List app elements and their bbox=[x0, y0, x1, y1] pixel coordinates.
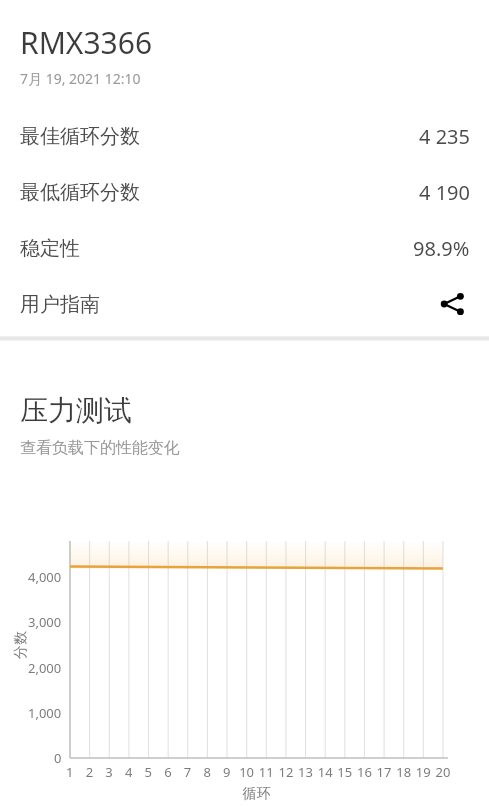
staticText: 7月 19, 2021 12:10 bbox=[20, 69, 141, 88]
staticText: 用户指南 bbox=[20, 292, 100, 317]
button[interactable]: 用户指南 bbox=[0, 276, 489, 332]
staticText: 查看负载下的性能变化 bbox=[20, 438, 180, 458]
staticText: 稳定性 bbox=[20, 236, 80, 261]
staticText: 4 190 bbox=[419, 179, 470, 206]
staticText: RMX3366 bbox=[20, 22, 153, 63]
staticText: 4 235 bbox=[419, 123, 470, 150]
button[interactable]: 最低循环分数 bbox=[0, 164, 489, 220]
staticText: 最佳循环分数 bbox=[20, 124, 140, 149]
button[interactable]: 最佳循环分数 bbox=[0, 108, 489, 164]
staticText: 压力测试 bbox=[20, 393, 132, 428]
button[interactable]: Share bbox=[435, 287, 469, 321]
staticText: 98.9% bbox=[413, 235, 470, 262]
staticText: 最低循环分数 bbox=[20, 180, 140, 205]
button[interactable]: 稳定性 bbox=[0, 220, 489, 276]
